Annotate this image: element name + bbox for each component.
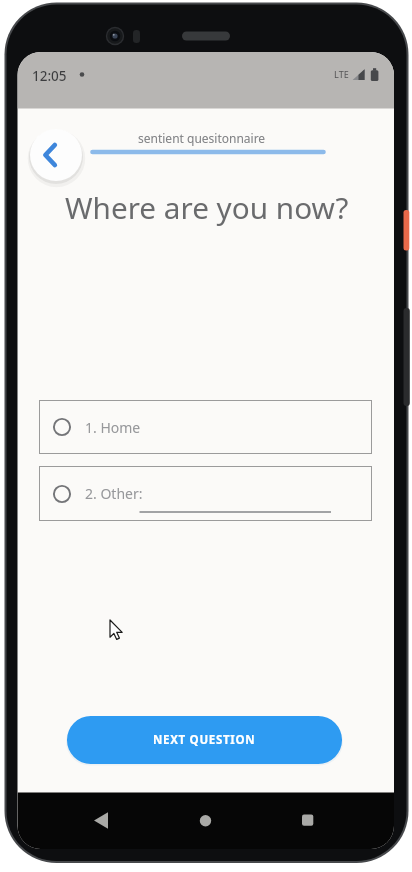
staticText: LTE (334, 68, 349, 80)
button[interactable] (77, 799, 121, 843)
button[interactable] (30, 129, 82, 181)
staticText: NEXT QUESTION (153, 732, 256, 748)
button[interactable]: 2. Other: (39, 466, 372, 521)
staticText: 12:05 (32, 67, 67, 85)
staticText: Where are you now? (65, 187, 349, 227)
staticText: 1. Home (85, 418, 141, 437)
button[interactable] (286, 799, 330, 843)
staticText: 2. Other: (85, 484, 143, 503)
button[interactable] (184, 799, 228, 843)
button[interactable]: 1. Home (39, 400, 372, 454)
staticText: sentient quesitonnaire (138, 130, 266, 146)
button[interactable]: NEXT QUESTION (67, 716, 342, 764)
